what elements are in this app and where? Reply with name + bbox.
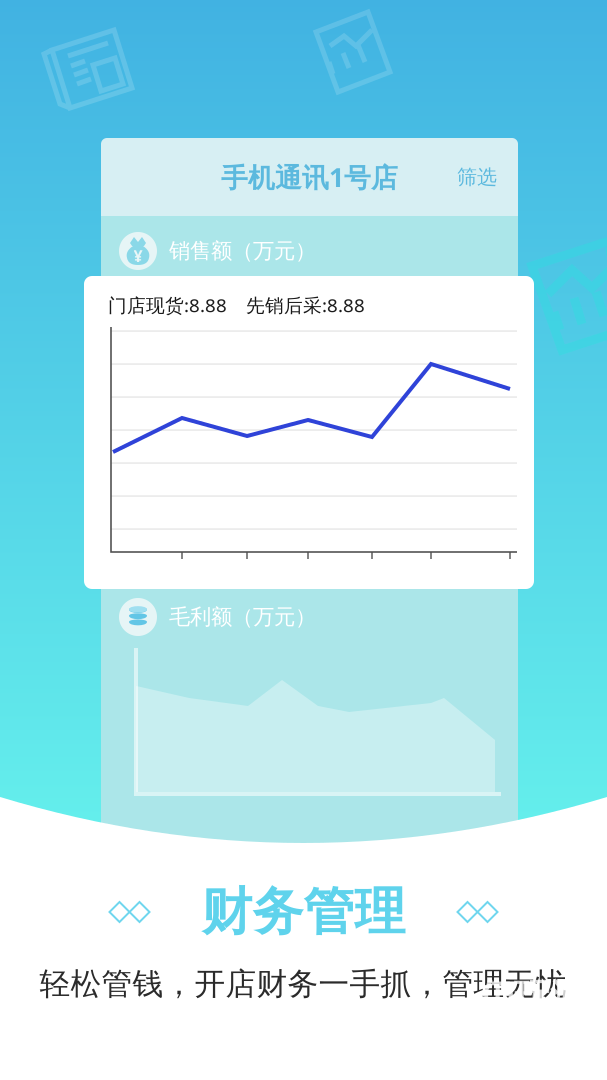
staticText: ¥ (133, 245, 142, 267)
staticText: 毛利额（万元） (169, 604, 316, 630)
staticText: 销售额（万元） (169, 238, 316, 264)
staticText: 财务管理 (201, 881, 405, 943)
staticText: 门店现货:8.88 先销后采:8.88 (108, 293, 365, 317)
staticText: 筛选 (457, 165, 497, 189)
staticText: 仍玩游戏 (478, 975, 586, 1063)
staticText: 轻松管钱，开店财务一手抓，管理无忧 (39, 965, 566, 1003)
button[interactable]: 筛选 (450, 157, 504, 197)
staticText: 手机通讯1号店 (221, 159, 398, 195)
